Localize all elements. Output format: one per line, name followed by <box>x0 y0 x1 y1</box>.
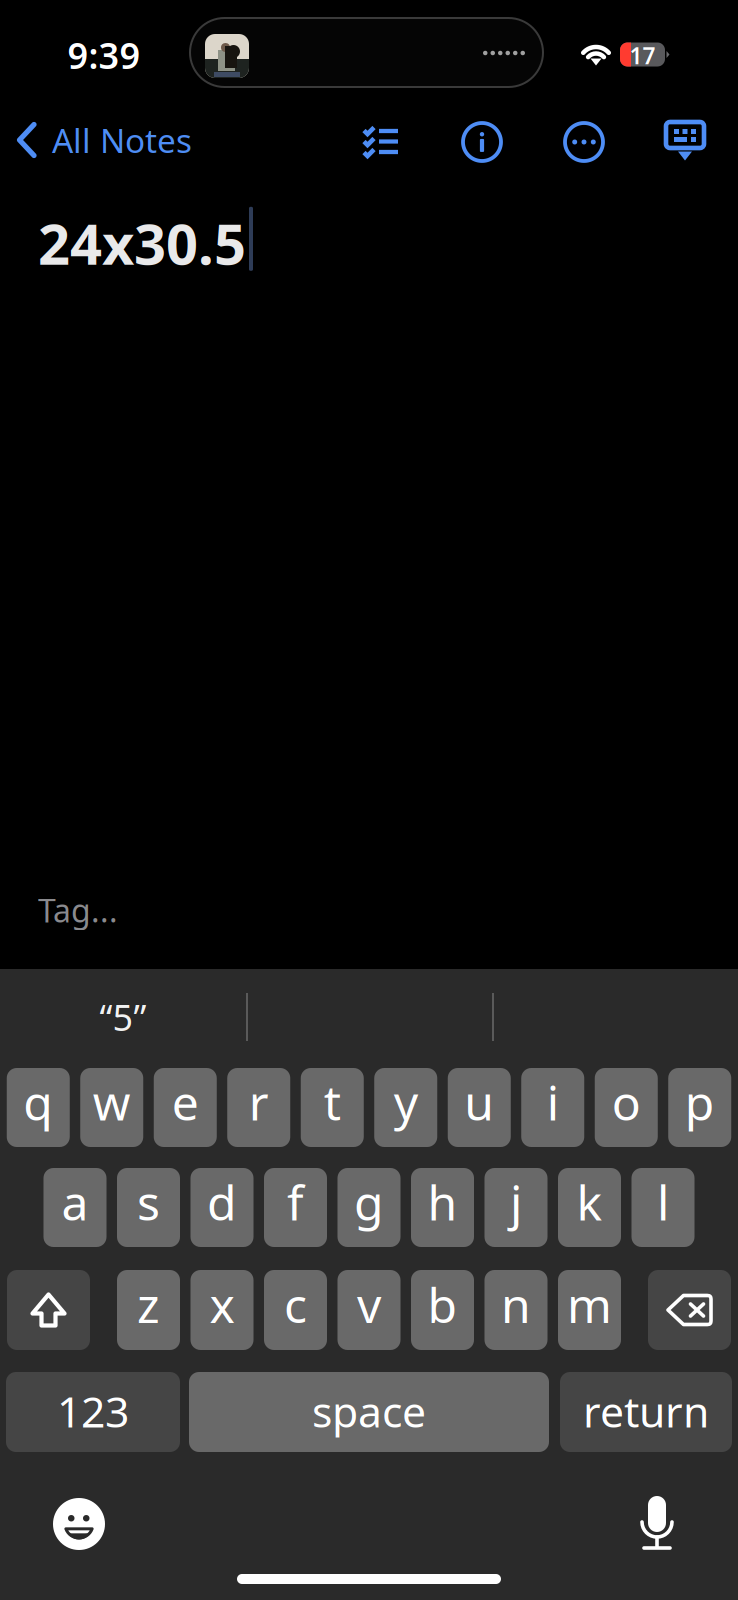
staticText: return <box>583 1383 709 1439</box>
staticText: q <box>23 1070 53 1134</box>
button[interactable]: Emoji <box>53 1498 105 1550</box>
staticText: g <box>354 1170 384 1234</box>
staticText: m <box>567 1273 612 1336</box>
staticText: a <box>61 1170 88 1234</box>
staticText: c <box>284 1273 307 1336</box>
staticText: h <box>427 1170 457 1234</box>
button[interactable]: g <box>337 1168 400 1247</box>
button[interactable]: m <box>558 1270 621 1350</box>
staticText: u <box>464 1070 494 1134</box>
button[interactable]: s <box>117 1168 180 1247</box>
staticText: j <box>510 1170 522 1234</box>
staticText: 123 <box>57 1383 129 1439</box>
staticText: Tag... <box>38 889 118 931</box>
button[interactable]: y <box>374 1068 437 1147</box>
button[interactable]: x <box>190 1270 253 1350</box>
staticText: o <box>612 1070 641 1134</box>
staticText: k <box>576 1170 602 1234</box>
button[interactable]: return <box>560 1372 732 1452</box>
button[interactable]: n <box>484 1270 547 1350</box>
button[interactable]: z <box>117 1270 180 1350</box>
staticText: y <box>394 1070 418 1134</box>
staticText: n <box>501 1273 531 1336</box>
staticText: x <box>209 1273 234 1336</box>
staticText: r <box>249 1070 269 1134</box>
button[interactable]: r <box>227 1068 290 1147</box>
button[interactable]: o <box>595 1068 658 1147</box>
button[interactable]: More <box>563 121 605 163</box>
button[interactable]: w <box>80 1068 143 1147</box>
staticText: i <box>547 1070 559 1134</box>
staticText: w <box>93 1070 131 1134</box>
button[interactable]: Info <box>461 121 503 163</box>
staticText: e <box>172 1070 199 1134</box>
staticText: b <box>427 1273 457 1336</box>
staticText: t <box>324 1070 341 1134</box>
staticText: space <box>312 1383 426 1439</box>
button[interactable]: Hide Keyboard <box>663 122 707 166</box>
button[interactable]: j <box>484 1168 547 1247</box>
button[interactable]: a <box>43 1168 106 1247</box>
button[interactable]: t <box>301 1068 364 1147</box>
staticText: All Notes <box>52 118 192 162</box>
staticText: l <box>657 1170 669 1234</box>
staticText: f <box>287 1170 304 1234</box>
staticText: 9:39 <box>67 31 140 79</box>
button[interactable]: d <box>190 1168 253 1247</box>
button[interactable]: c <box>264 1270 327 1350</box>
button[interactable]: l <box>631 1168 694 1247</box>
staticText: z <box>137 1273 160 1336</box>
button[interactable]: u <box>448 1068 511 1147</box>
staticText: 24x30.5 <box>38 206 246 280</box>
button[interactable]: b <box>411 1270 474 1350</box>
button[interactable]: Checklist <box>363 126 399 157</box>
staticText: 17 <box>629 40 655 70</box>
button[interactable]: 123 <box>6 1372 180 1452</box>
staticText: v <box>357 1273 381 1336</box>
button[interactable]: f <box>264 1168 327 1247</box>
button[interactable]: i <box>521 1068 584 1147</box>
button[interactable]: p <box>668 1068 731 1147</box>
button[interactable]: All Notes <box>16 112 218 168</box>
button[interactable]: Dictate <box>635 1496 679 1552</box>
button[interactable]: v <box>337 1270 400 1350</box>
staticText: “5” <box>99 993 146 1041</box>
button[interactable]: space <box>189 1372 549 1452</box>
button[interactable]: Delete <box>648 1270 731 1350</box>
button[interactable]: k <box>558 1168 621 1247</box>
button[interactable]: e <box>154 1068 217 1147</box>
button[interactable]: h <box>411 1168 474 1247</box>
staticText: s <box>137 1170 160 1234</box>
button[interactable]: Shift <box>7 1270 90 1350</box>
staticText: p <box>685 1070 715 1134</box>
button[interactable]: “5” <box>0 970 246 1064</box>
staticText: d <box>207 1170 237 1234</box>
button[interactable]: q <box>7 1068 70 1147</box>
